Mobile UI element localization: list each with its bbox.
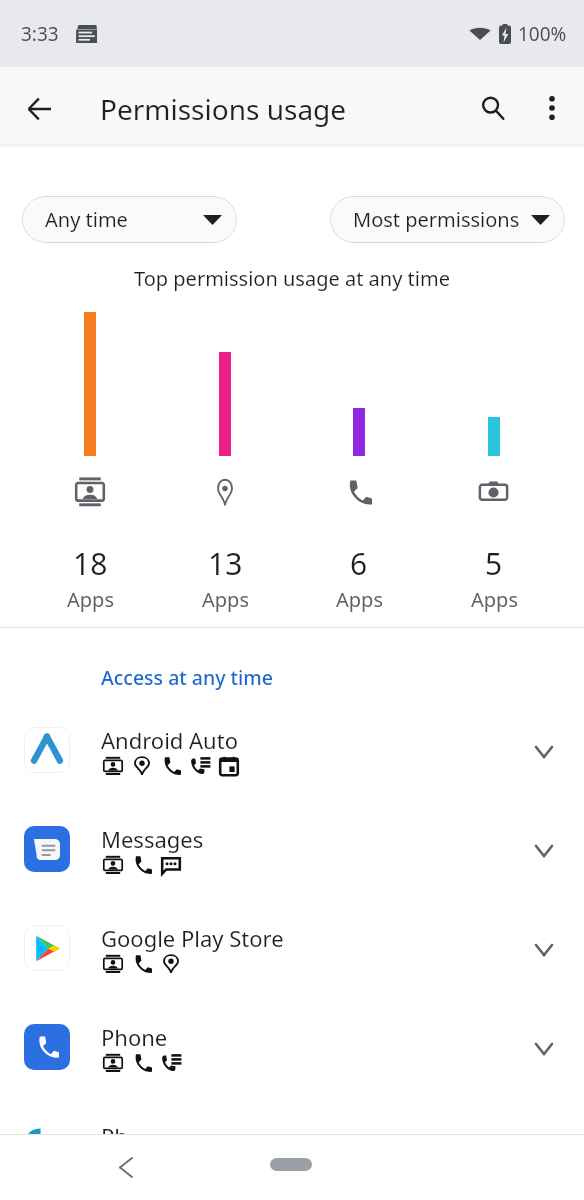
staticText: Phone — [101, 1022, 168, 1052]
staticText: Apps — [336, 586, 383, 613]
button[interactable]: Android Auto — [0, 714, 584, 813]
staticText: Messages — [101, 824, 204, 854]
staticText: 18 — [73, 543, 108, 584]
staticText: Android Auto — [101, 725, 238, 755]
staticText: Apps — [67, 586, 114, 613]
staticText: Permissions usage — [100, 90, 347, 128]
button[interactable]: Most permissions — [330, 196, 565, 243]
staticText: 5 — [485, 543, 503, 584]
staticText: Ph — [101, 1121, 128, 1151]
button[interactable]: Phone — [0, 1011, 584, 1110]
staticText: Apps — [471, 586, 518, 613]
button[interactable]: More options — [529, 85, 575, 131]
staticText: 13 — [208, 543, 243, 584]
staticText: 100% — [518, 21, 567, 47]
staticText: Access at any time — [101, 664, 273, 691]
button[interactable]: Ph — [0, 1110, 584, 1200]
staticText: Google Play Store — [101, 923, 284, 953]
staticText: Top permission usage at any time — [134, 265, 450, 292]
button[interactable]: Back — [16, 85, 63, 132]
button[interactable]: Any time — [22, 196, 237, 243]
staticText: 6 — [350, 543, 368, 584]
button[interactable]: Messages — [0, 813, 584, 912]
button[interactable]: Google Play Store — [0, 912, 584, 1011]
staticText: Apps — [202, 586, 249, 613]
button[interactable]: Home — [270, 1158, 312, 1171]
staticText: Any time — [45, 206, 128, 233]
staticText: 3:33 — [21, 21, 59, 47]
button[interactable]: Search — [469, 84, 517, 132]
staticText: Most permissions — [353, 206, 520, 233]
button[interactable]: Back — [106, 1147, 146, 1187]
